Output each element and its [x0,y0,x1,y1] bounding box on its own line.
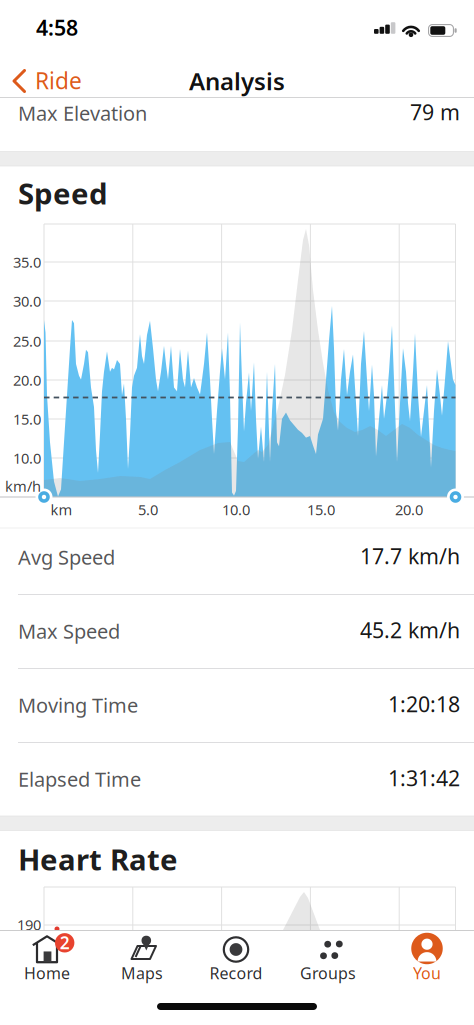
staticText: 10.0 [222,500,250,519]
staticText: 15.0 [307,500,335,519]
button[interactable]: Ride [0,59,90,103]
staticText: Elapsed Time [18,766,141,792]
staticText: km/h [5,476,41,496]
staticText: Home [24,962,70,984]
staticText: 1:31:42 [388,764,460,792]
staticText: 25.0 [13,331,41,351]
staticText: 4:58 [36,13,78,42]
staticText: 45.2 km/h [360,616,460,644]
button[interactable]: Record [189,932,283,994]
staticText: Ride [35,65,82,95]
button[interactable]: Maps [95,932,189,994]
staticText: Speed [18,173,108,212]
staticText: Analysis [189,65,285,97]
staticText: Record [209,962,262,984]
staticText: 15.0 [13,409,41,429]
staticText: 20.0 [395,500,423,519]
staticText: Avg Speed [18,544,115,570]
staticText: 20.0 [13,370,41,390]
button[interactable]: 2 [0,932,94,994]
staticText: Heart Rate [18,839,178,878]
staticText: 10.0 [13,448,41,468]
staticText: 190 [17,915,41,934]
button[interactable]: You [380,932,474,994]
staticText: Groups [300,962,356,984]
staticText: km [50,500,72,519]
staticText: 5.0 [138,500,158,519]
staticText: Moving Time [18,692,138,718]
staticText: Maps [121,962,163,984]
staticText: You [413,962,441,984]
staticText: 35.0 [13,252,41,272]
staticText: Max Speed [18,618,120,644]
button[interactable]: Groups [281,932,375,994]
staticText: 79 m [410,98,460,126]
staticText: 30.0 [13,291,41,311]
staticText: 17.7 km/h [360,542,460,570]
staticText: Max Elevation [18,100,147,126]
staticText: 2 [60,931,70,954]
staticText: 1:20:18 [388,690,460,718]
